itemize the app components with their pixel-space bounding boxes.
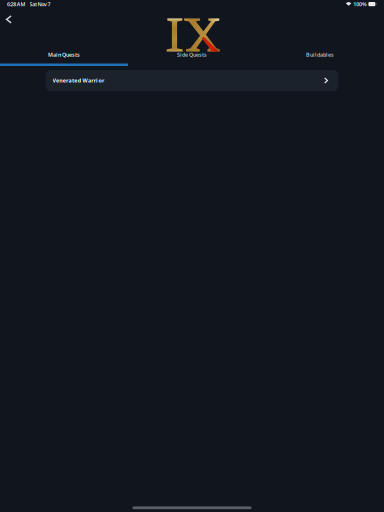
button[interactable]: Back bbox=[0, 7, 22, 32]
staticText: Sat Nov 7 bbox=[29, 1, 50, 8]
staticText: 100% bbox=[353, 1, 367, 8]
staticText: Main Quests bbox=[48, 51, 80, 58]
button[interactable]: Side Quests bbox=[128, 46, 256, 66]
staticText: 6:28 AM bbox=[7, 1, 25, 8]
button[interactable]: Buildables bbox=[256, 46, 384, 66]
staticText: Venerated Warrior bbox=[52, 77, 104, 84]
button[interactable]: Venerated Warrior bbox=[46, 70, 338, 91]
staticText: Buildables bbox=[306, 51, 334, 58]
button[interactable]: Main Quests bbox=[0, 46, 128, 66]
staticText: Side Quests bbox=[177, 51, 207, 58]
